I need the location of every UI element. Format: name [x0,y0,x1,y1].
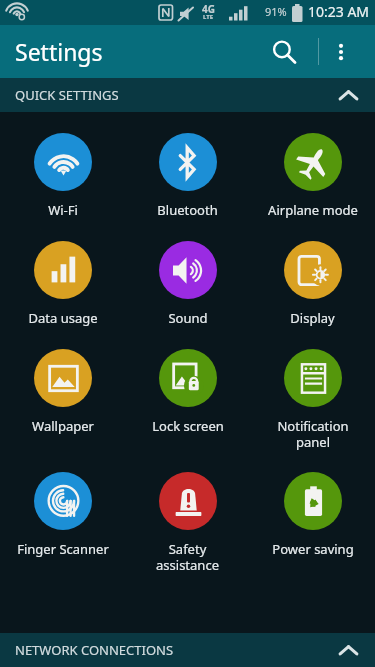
staticText: 4G [202,2,215,16]
staticText: Lock screen [152,417,224,435]
button[interactable]: More options [318,29,364,75]
button[interactable]: Wallpaper [0,349,125,435]
staticText: Safety assistance [156,540,219,573]
button[interactable]: NETWORK CONNECTIONS [0,633,375,667]
staticText: NETWORK CONNECTIONS [15,641,174,659]
button[interactable]: Airplane mode [250,133,375,219]
button[interactable]: Data usage [0,241,125,327]
button[interactable]: Wi-Fi [0,133,125,219]
button[interactable]: Safety assistance [125,472,250,573]
staticText: Power saving [272,540,354,558]
button[interactable]: QUICK SETTINGS [0,78,375,112]
staticText: Notification panel [277,417,349,450]
staticText: Bluetooth [157,201,218,219]
button[interactable]: Sound [125,241,250,327]
button[interactable]: Lock screen [125,349,250,435]
button[interactable]: Search [261,29,307,75]
staticText: 10:23 AM [308,2,370,21]
staticText: 91% [265,4,287,19]
staticText: Wi-Fi [48,201,78,219]
button[interactable]: Notification panel [250,349,375,450]
staticText: Display [290,309,335,327]
staticText: LTE [203,13,214,21]
staticText: Finger Scanner [17,540,109,558]
staticText: Airplane mode [268,201,358,219]
staticText: Sound [168,309,208,327]
staticText: Wallpaper [32,417,94,435]
button[interactable]: Bluetooth [125,133,250,219]
button[interactable]: Display [250,241,375,327]
staticText: Settings [15,36,103,67]
staticText: QUICK SETTINGS [15,86,119,104]
button[interactable]: Power saving [250,472,375,558]
button[interactable]: Finger Scanner [0,472,125,558]
staticText: Data usage [28,309,98,327]
